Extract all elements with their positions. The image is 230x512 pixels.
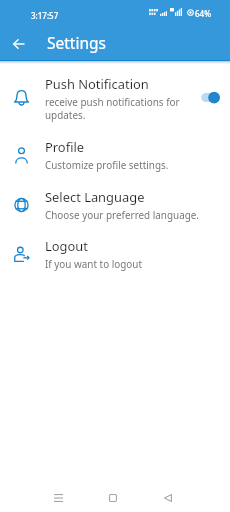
staticText: 64%	[195, 8, 211, 19]
staticText: receive push notifications for updates.	[45, 95, 215, 121]
staticText: Settings	[47, 32, 106, 53]
button[interactable]: Logout	[0, 231, 230, 277]
button[interactable]: Back	[5, 30, 32, 57]
button[interactable]: Select Language	[0, 182, 230, 228]
button[interactable]: Back	[153, 488, 183, 508]
staticText: Push Notification	[45, 75, 149, 93]
button[interactable]: Home	[98, 488, 128, 508]
button[interactable]: Profile	[0, 132, 230, 178]
staticText: Choose your preferred language.	[45, 208, 200, 221]
staticText: Customize profile settings.	[45, 158, 169, 171]
staticText: If you want to logout	[45, 257, 143, 270]
staticText: Logout	[45, 237, 88, 255]
staticText: 3:17:57	[31, 10, 59, 21]
staticText: Profile	[45, 138, 85, 156]
button[interactable]: Toggle push notifications	[197, 88, 225, 106]
button[interactable]: Push Notification	[0, 69, 230, 127]
staticText: Select Language	[45, 188, 145, 206]
button[interactable]: Recent apps	[43, 488, 73, 508]
